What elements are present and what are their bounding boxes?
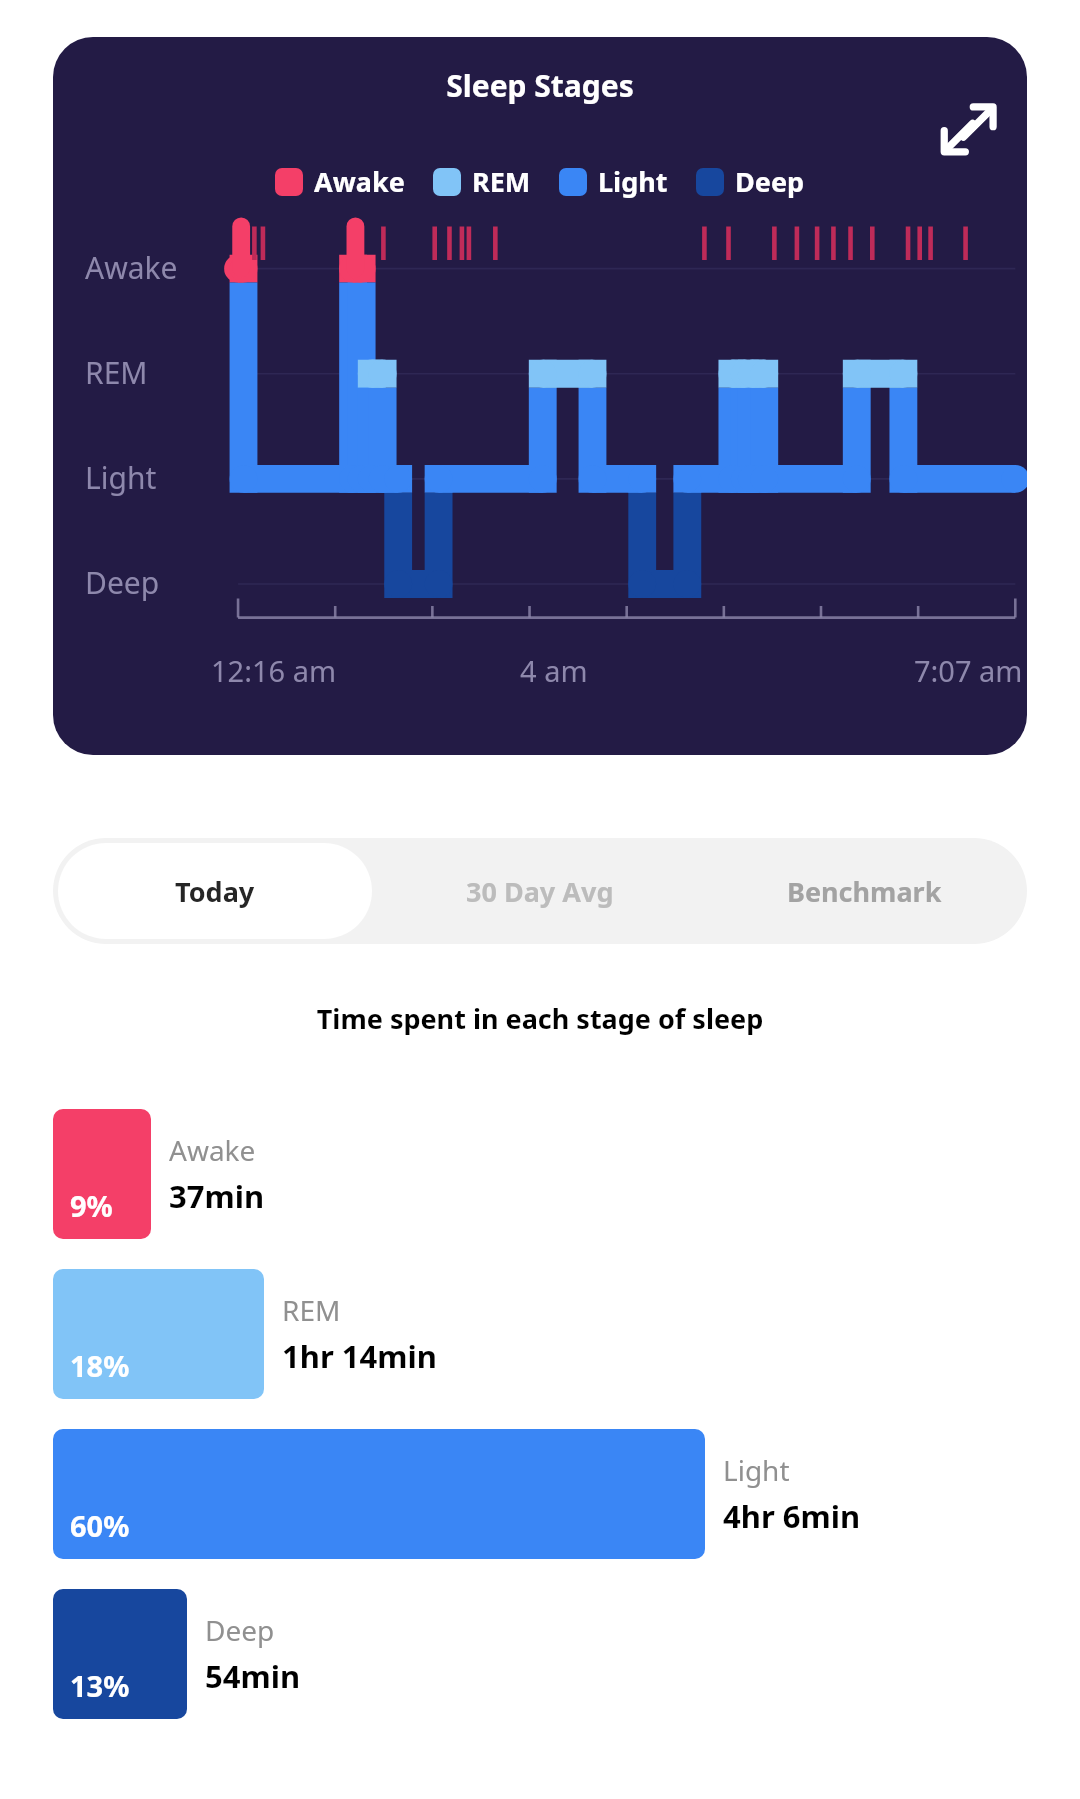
staticText: Deep (735, 163, 805, 200)
staticText: 4 am (520, 651, 588, 690)
staticText: REM (472, 163, 531, 200)
button[interactable]: 13% (53, 1589, 1080, 1719)
staticText: 37min (169, 1175, 265, 1217)
staticText: 30 Day Avg (466, 873, 614, 910)
staticText: Awake (169, 1131, 256, 1169)
staticText: 18% (70, 1346, 130, 1385)
button[interactable]: 60% (53, 1429, 1080, 1559)
staticText: Light (598, 163, 668, 200)
staticText: REM (282, 1291, 341, 1329)
staticText: Sleep Stages (53, 65, 1027, 106)
button[interactable]: Expand chart (935, 95, 1001, 161)
staticText: 54min (205, 1655, 301, 1697)
staticText: Deep (85, 562, 160, 603)
staticText: Light (723, 1451, 790, 1489)
staticText: Benchmark (787, 873, 942, 910)
button[interactable]: Sleep Stages (53, 37, 1027, 755)
staticText: 9% (70, 1186, 113, 1225)
staticText: Deep (205, 1611, 275, 1649)
staticText: 1hr 14min (282, 1335, 437, 1377)
staticText: Awake (314, 163, 405, 200)
staticText: Awake (85, 247, 178, 288)
staticText: REM (85, 352, 148, 393)
staticText: 4hr 6min (723, 1495, 861, 1537)
button[interactable]: Today (58, 843, 372, 939)
staticText: 12:16 am (211, 651, 337, 690)
button[interactable]: 9% (53, 1109, 1080, 1239)
button[interactable]: 18% (53, 1269, 1080, 1399)
staticText: 13% (70, 1666, 130, 1705)
button[interactable]: Benchmark (702, 838, 1027, 944)
staticText: 7:07 am (914, 651, 1023, 690)
staticText: Today (175, 873, 255, 910)
staticText: Light (85, 457, 157, 498)
staticText: 60% (70, 1506, 130, 1545)
staticText: Time spent in each stage of sleep (0, 1000, 1080, 1037)
button[interactable]: 30 Day Avg (377, 838, 702, 944)
